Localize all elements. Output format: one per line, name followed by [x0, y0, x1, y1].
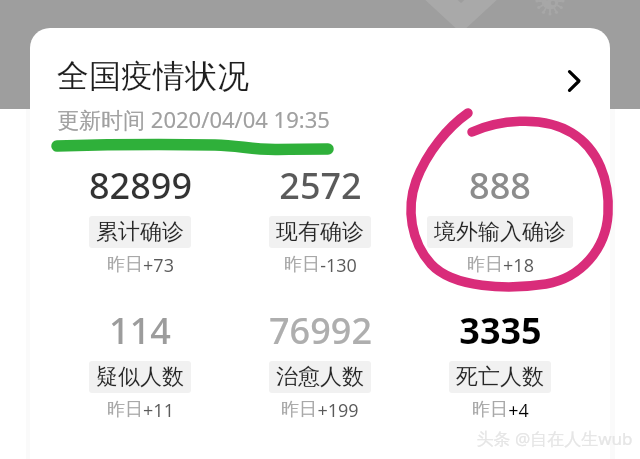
- staticText: 昨日: [467, 253, 503, 276]
- staticText: +199: [317, 398, 359, 423]
- staticText: +73: [143, 253, 174, 278]
- staticText: 昨日: [472, 398, 508, 421]
- button[interactable]: 82899: [50, 161, 230, 278]
- staticText: 昨日: [107, 253, 143, 276]
- staticText: 累计确诊: [96, 218, 184, 246]
- staticText: 头条 @自在人生wub: [476, 427, 633, 450]
- button[interactable]: 114: [50, 306, 230, 423]
- button[interactable]: 2572: [230, 161, 410, 278]
- staticText: 76992: [269, 306, 372, 355]
- staticText: 境外输入确诊: [434, 218, 566, 246]
- staticText: -130: [320, 253, 357, 278]
- staticText: 疑似人数: [96, 363, 184, 391]
- button[interactable]: 76992: [230, 306, 410, 423]
- button[interactable]: More details: [552, 59, 596, 103]
- staticText: 2572: [279, 161, 362, 210]
- staticText: 死亡人数: [456, 363, 544, 391]
- staticText: 昨日: [107, 398, 143, 421]
- staticText: 114: [109, 306, 171, 355]
- staticText: +4: [508, 398, 529, 423]
- staticText: 82899: [89, 161, 192, 210]
- staticText: 昨日: [284, 253, 320, 276]
- button[interactable]: 3335: [410, 306, 590, 423]
- staticText: +11: [143, 398, 174, 423]
- button[interactable]: 全国疫情状况: [30, 56, 610, 134]
- button[interactable]: 888: [410, 161, 590, 278]
- staticText: 昨日: [281, 398, 317, 421]
- staticText: 治愈人数: [276, 363, 364, 391]
- staticText: 888: [469, 161, 531, 210]
- staticText: 3335: [459, 306, 542, 355]
- staticText: 现有确诊: [276, 218, 364, 246]
- staticText: 全国疫情状况: [57, 56, 249, 96]
- staticText: 更新时间 2020/04/04 19:35: [57, 104, 330, 134]
- staticText: +18: [503, 253, 534, 278]
